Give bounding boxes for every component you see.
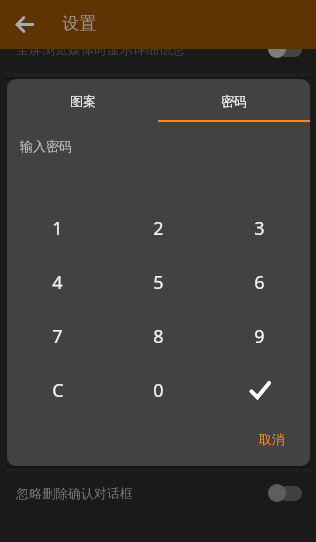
button[interactable]: Confirm [209, 363, 310, 417]
button[interactable]: 图案 [7, 79, 158, 122]
button[interactable]: 忽略删除确认对话框 [0, 478, 316, 508]
other: Confirm [247, 377, 273, 403]
button[interactable]: 1 [7, 201, 108, 255]
staticText: 图案 [70, 93, 96, 109]
button[interactable]: 3 [209, 201, 310, 255]
staticText: 6 [254, 270, 265, 295]
button[interactable]: 取消 [253, 427, 291, 451]
staticText: 9 [254, 324, 265, 349]
staticText: 0 [153, 378, 164, 403]
button[interactable]: 全屏浏览媒体时显示详细信息 [0, 34, 316, 64]
button[interactable]: 9 [209, 309, 310, 363]
button[interactable]: Back [0, 0, 48, 49]
staticText: 1 [52, 216, 63, 241]
button[interactable]: 5 [108, 255, 209, 309]
button[interactable]: 8 [108, 309, 209, 363]
staticText: 5 [153, 270, 164, 295]
staticText: 7 [52, 324, 63, 349]
staticText: 输入密码 [20, 138, 72, 154]
staticText: 2 [153, 216, 164, 241]
button[interactable]: 6 [209, 255, 310, 309]
button[interactable]: 7 [7, 309, 108, 363]
button[interactable]: 密码 [158, 79, 310, 122]
staticText: 设置 [62, 13, 96, 34]
staticText: 全屏浏览媒体时显示详细信息 [16, 41, 268, 57]
staticText: 取消 [259, 431, 285, 447]
staticText: 4 [52, 270, 63, 295]
staticText: 8 [153, 324, 164, 349]
button[interactable]: 0 [108, 363, 209, 417]
staticText: C [52, 378, 64, 403]
button[interactable]: 4 [7, 255, 108, 309]
staticText: 忽略删除确认对话框 [16, 485, 268, 501]
button[interactable]: C [7, 363, 108, 417]
staticText: 3 [254, 216, 265, 241]
button[interactable]: 2 [108, 201, 209, 255]
staticText: 密码 [221, 93, 247, 109]
